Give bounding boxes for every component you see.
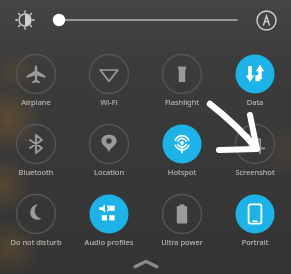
staticText: Bluetooth — [3, 167, 69, 177]
button[interactable]: Data — [222, 51, 288, 107]
staticText: Do not disturb — [3, 237, 69, 247]
button[interactable]: Location — [76, 121, 142, 177]
button[interactable] — [46, 7, 243, 33]
button[interactable]: Auto brightness — [251, 5, 281, 35]
staticText: Flashlight — [149, 97, 215, 107]
button[interactable]: Screenshot — [222, 121, 288, 177]
staticText: Airplane — [3, 97, 69, 107]
button[interactable]: Wi-Fi — [76, 51, 142, 107]
staticText: Ultra power — [149, 237, 215, 247]
staticText: Screenshot — [222, 167, 288, 177]
staticText: Location — [76, 167, 142, 177]
button[interactable]: Portrait — [222, 191, 288, 247]
staticText: Wi-Fi — [76, 97, 142, 107]
button[interactable]: Hotspot — [149, 121, 215, 177]
button[interactable]: Do not disturb — [3, 191, 69, 247]
staticText: Data — [222, 97, 288, 107]
button[interactable]: Ultra power — [149, 191, 215, 247]
button[interactable]: Flashlight — [149, 51, 215, 107]
button[interactable]: Brightness — [10, 5, 40, 35]
button[interactable]: Bluetooth — [3, 121, 69, 177]
button[interactable]: Audio profiles — [76, 191, 142, 247]
staticText: Portrait — [222, 237, 288, 247]
button[interactable]: Airplane — [3, 51, 69, 107]
staticText: Audio profiles — [76, 237, 142, 247]
staticText: Hotspot — [149, 167, 215, 177]
